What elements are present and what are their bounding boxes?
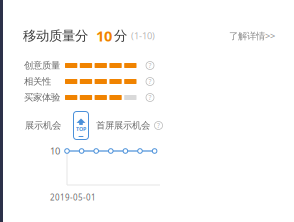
staticText: 10: [50, 145, 60, 157]
staticText: ?: [148, 93, 151, 102]
staticText: 移动质量分: [23, 28, 88, 44]
staticText: ?: [148, 61, 151, 70]
staticText: 相关性: [24, 76, 51, 87]
staticText: ?: [157, 121, 160, 130]
staticText: ?: [148, 77, 151, 86]
staticText: 10: [96, 26, 112, 45]
staticText: 2019-05-01: [50, 192, 96, 203]
staticText: 了解详情>>: [229, 29, 275, 42]
staticText: 创意质量: [24, 60, 60, 71]
staticText: 首屏展示机会: [96, 120, 150, 131]
staticText: 买家体验: [24, 92, 60, 103]
staticText: 展示机会: [25, 120, 61, 131]
button[interactable]: 了解详情>>: [229, 29, 275, 42]
staticText: (1-10): [131, 29, 155, 42]
staticText: 分: [114, 28, 127, 44]
staticText: TOP: [76, 125, 86, 133]
